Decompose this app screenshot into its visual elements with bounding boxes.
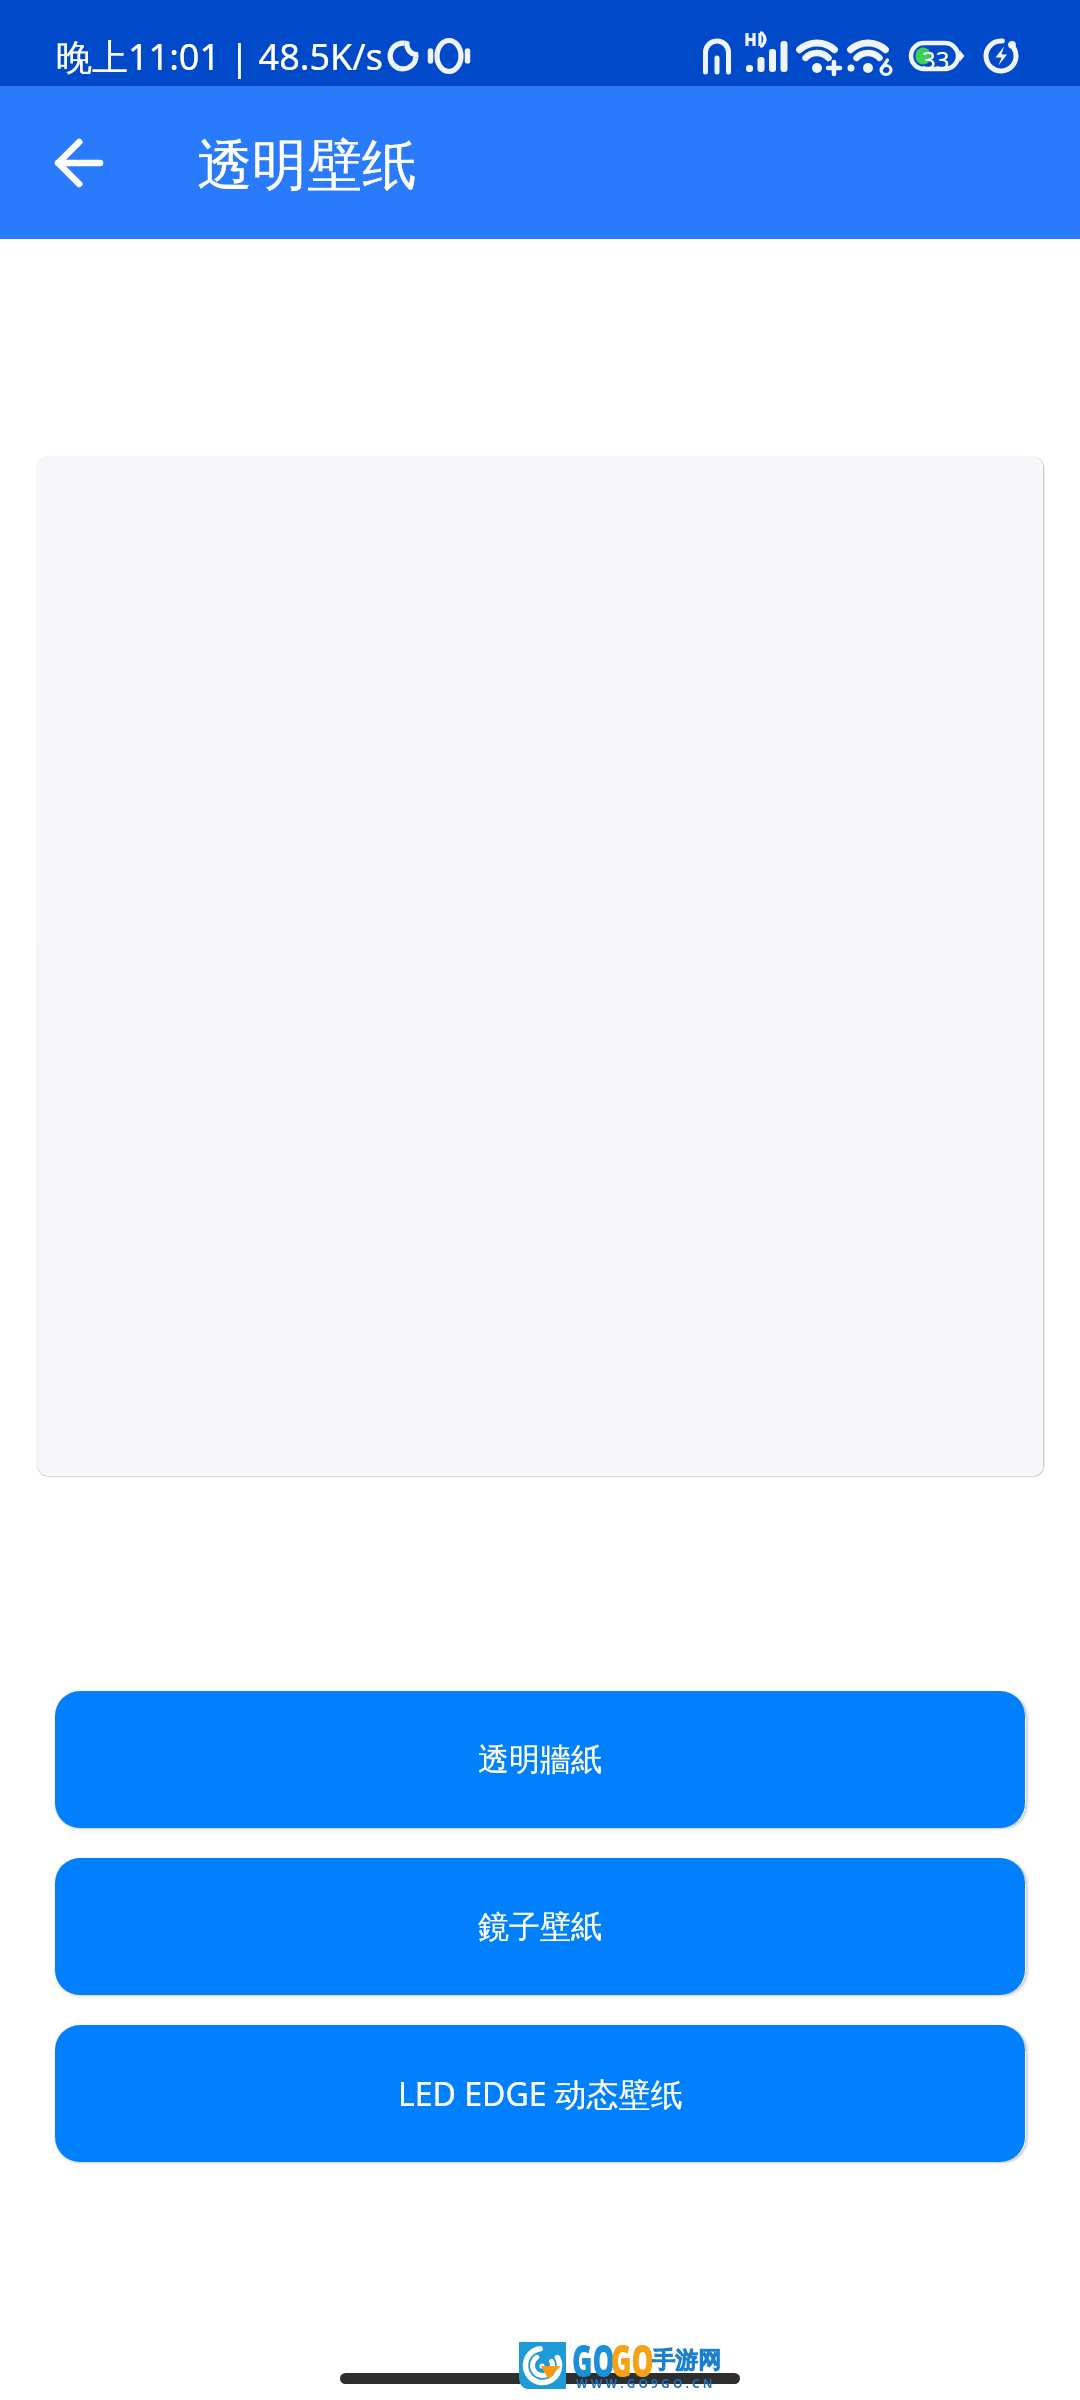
staticText: GO [611, 2330, 654, 2389]
staticText: 晚上11:01 | 48.5K/s [56, 32, 383, 81]
staticText: LED EDGE 动态壁纸 [398, 2072, 683, 2116]
staticText: 鏡子壁紙 [478, 1907, 602, 1946]
staticText: W W W . G O 9 G O . C N [576, 2375, 713, 2391]
button[interactable]: 鏡子壁紙 [55, 1858, 1025, 1995]
staticText: GO [572, 2330, 615, 2389]
staticText: 透明牆紙 [478, 1740, 602, 1779]
staticText: 手游网 [652, 2346, 721, 2375]
button[interactable]: 透明牆紙 [55, 1691, 1025, 1828]
button[interactable]: Back [8, 93, 148, 233]
button[interactable]: LED EDGE 动态壁纸 [55, 2025, 1025, 2162]
staticText: 透明壁纸 [197, 131, 417, 200]
staticText: 33 [922, 43, 950, 76]
